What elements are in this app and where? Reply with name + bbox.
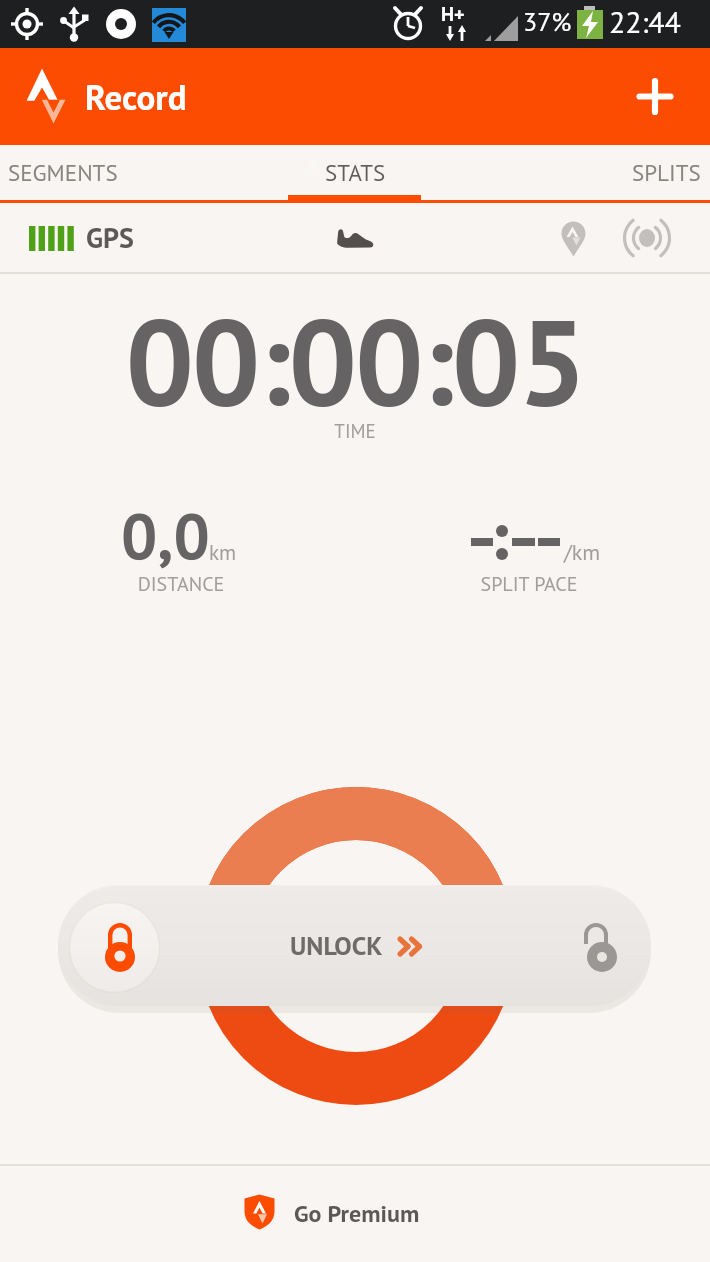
- button[interactable]: Add activity: [621, 63, 689, 131]
- button[interactable]: Go Premium: [0, 1164, 710, 1262]
- staticText: STATS: [325, 158, 386, 188]
- button[interactable]: Slide to unlock: [58, 885, 651, 1006]
- button[interactable]: SEGMENTS: [0, 145, 200, 203]
- button[interactable]: Beacon: [617, 212, 677, 264]
- staticText: Go Premium: [294, 1198, 420, 1229]
- staticText: SEGMENTS: [8, 158, 118, 188]
- staticText: Record: [85, 74, 187, 119]
- staticText: UNLOCK: [290, 929, 383, 963]
- staticText: /km: [564, 538, 601, 566]
- button[interactable]: Activity type: [320, 213, 390, 263]
- staticText: DISTANCE: [2, 571, 360, 597]
- button[interactable]: SPLITS: [510, 145, 710, 203]
- button[interactable]: Stop recording: [197, 787, 515, 1105]
- staticText: km: [209, 539, 237, 566]
- staticText: TIME: [0, 419, 710, 444]
- staticText: 00:00:05: [0, 282, 710, 439]
- staticText: 22:44: [609, 2, 681, 41]
- button[interactable]: Map: [545, 211, 601, 266]
- staticText: 37%: [523, 5, 572, 39]
- staticText: GPS: [86, 219, 134, 255]
- staticText: SPLIT PACE: [354, 571, 704, 597]
- button[interactable]: GPS: [29, 215, 134, 261]
- staticText: 0,0: [121, 494, 210, 577]
- button[interactable]: STATS: [255, 145, 455, 203]
- staticText: SPLITS: [632, 158, 701, 188]
- staticText: H+: [441, 1, 465, 27]
